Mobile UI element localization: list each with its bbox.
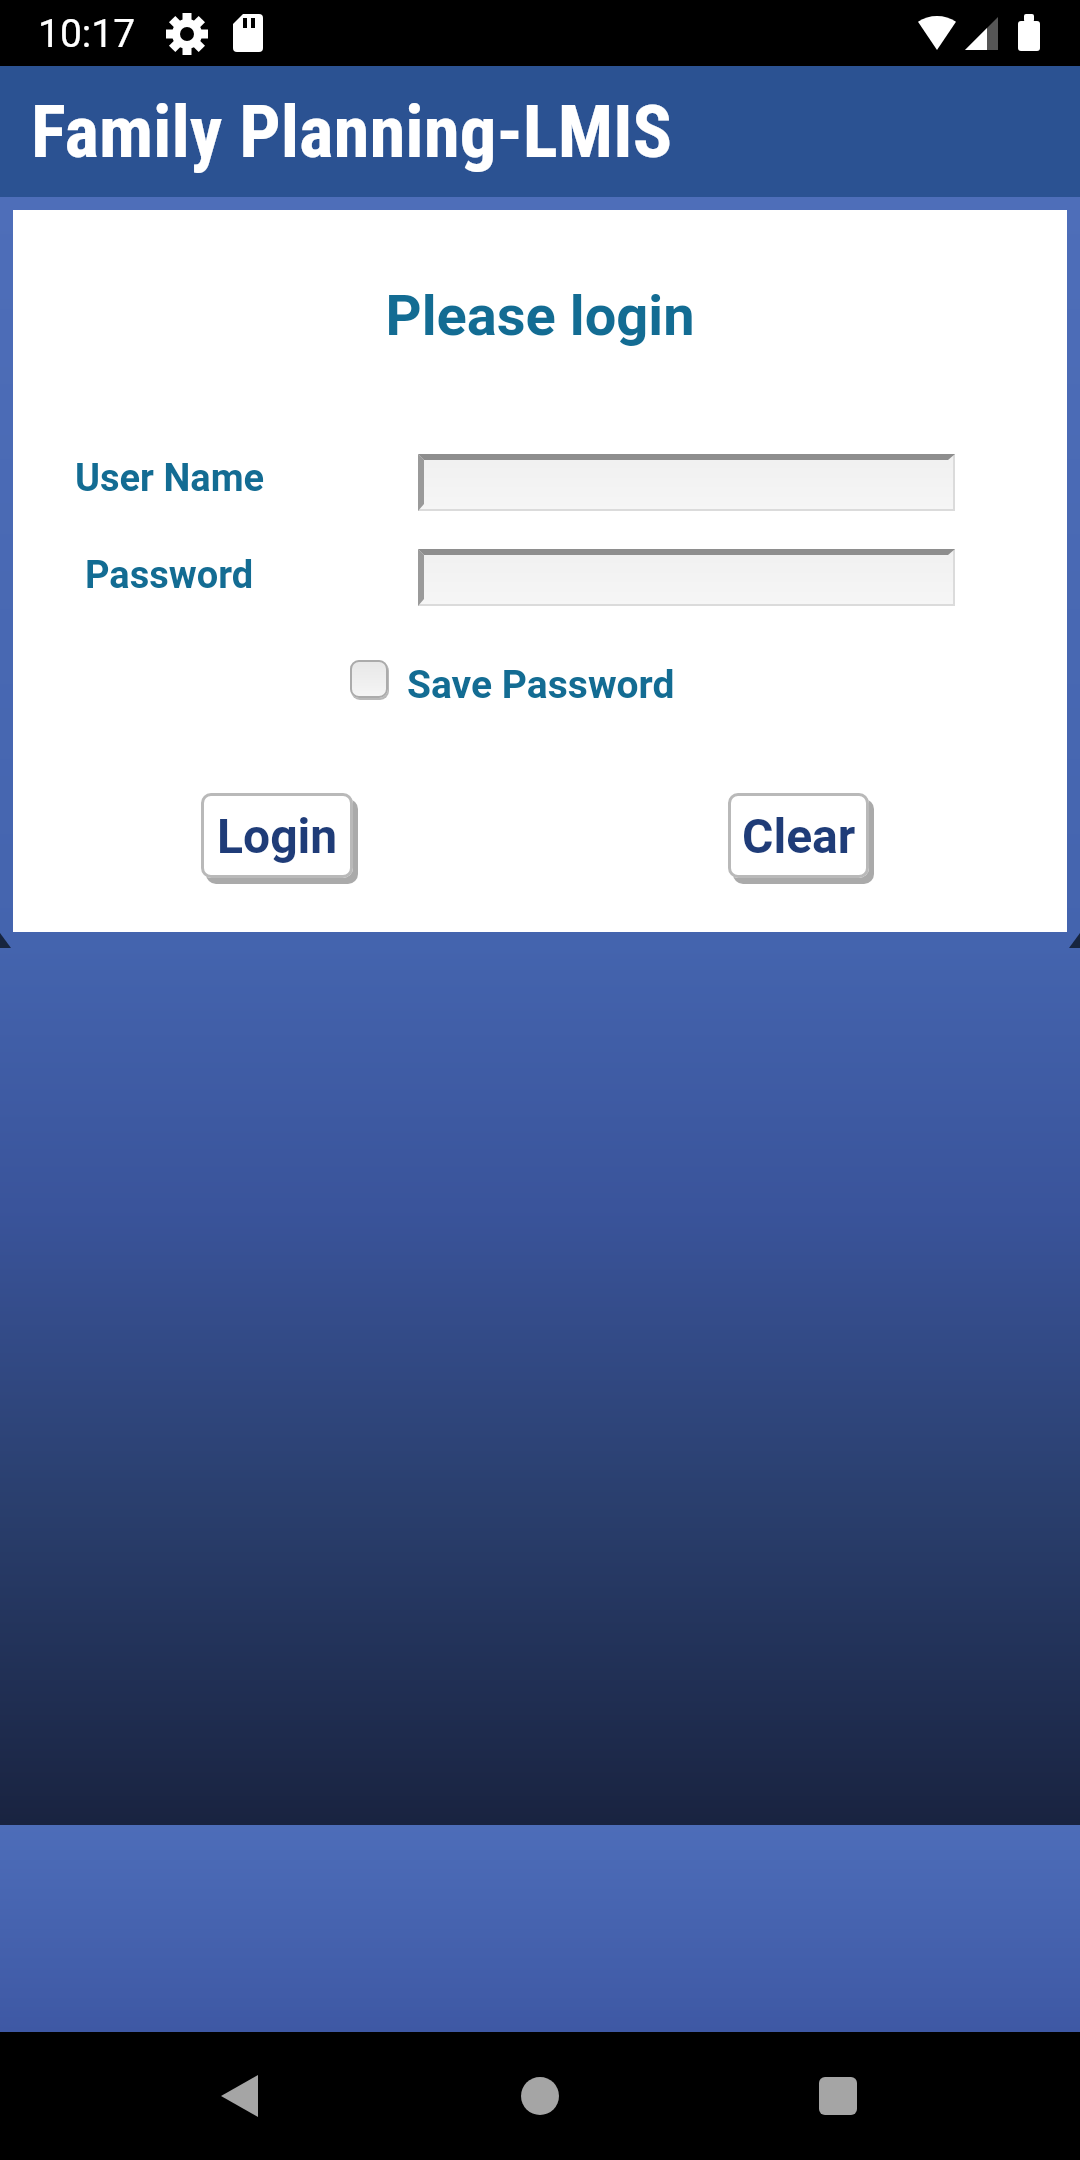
staticText: Please login [13,283,1067,349]
staticText: Save Password [407,662,675,708]
button[interactable]: Login [201,793,353,878]
staticText: Login [217,808,338,864]
staticText: User Name [75,456,265,501]
staticText: Clear [742,808,856,864]
button[interactable] [190,2066,290,2126]
button[interactable] [418,549,955,606]
button[interactable] [788,2066,888,2126]
staticText: 10:17 [38,11,136,57]
button[interactable]: Clear [728,793,869,878]
staticText: Password [85,553,254,598]
button[interactable] [490,2066,590,2126]
button[interactable] [418,454,955,511]
button[interactable] [350,660,388,698]
staticText: Family Planning-LMIS [31,89,673,175]
